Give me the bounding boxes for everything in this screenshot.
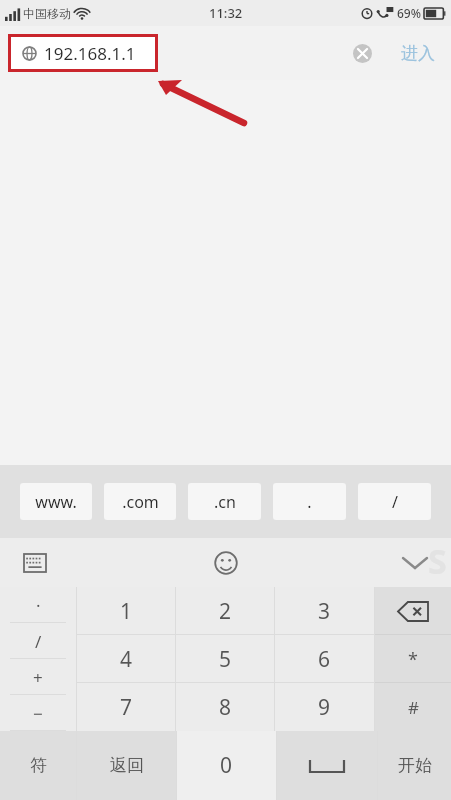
staticText: .cn [214, 491, 236, 513]
staticText: 2 [219, 597, 232, 626]
staticText: www. [35, 491, 77, 513]
button[interactable]: Backspace [375, 587, 451, 635]
staticText: / [392, 491, 398, 513]
button[interactable]: Emoji [206, 543, 246, 583]
button[interactable]: 4 [77, 635, 176, 683]
button[interactable]: / [358, 483, 431, 520]
staticText: − [33, 702, 43, 725]
staticText: · [36, 594, 41, 617]
staticText: 11:32 [209, 4, 243, 22]
staticText: 7 [120, 693, 133, 722]
button[interactable]: .cn [188, 483, 261, 520]
button[interactable]: 5 [176, 635, 275, 683]
staticText: 5 [219, 645, 232, 674]
button[interactable]: 192.168.1.1 [8, 34, 389, 72]
staticText: 符 [30, 755, 47, 776]
button[interactable]: 2 [176, 587, 275, 635]
staticText: 9 [318, 693, 331, 722]
staticText: S [428, 538, 447, 584]
staticText: 8 [219, 693, 232, 722]
button[interactable]: Hide keyboard [395, 543, 435, 583]
staticText: 开始 [398, 755, 432, 776]
button[interactable]: / [0, 623, 76, 659]
button[interactable]: 8 [176, 683, 275, 731]
button[interactable]: 0 [177, 731, 276, 800]
staticText: + [33, 666, 43, 689]
staticText: 中国移动 [23, 6, 71, 21]
staticText: 4 [120, 645, 133, 674]
button[interactable]: 符 [0, 731, 76, 800]
staticText: 6 [318, 645, 331, 674]
button[interactable]: * [375, 635, 451, 683]
button[interactable]: + [0, 659, 76, 695]
button[interactable]: 3 [275, 587, 374, 635]
button[interactable]: · [0, 587, 76, 623]
staticText: 0 [220, 751, 233, 780]
staticText: 192.168.1.1 [44, 42, 136, 65]
staticText: 返回 [110, 755, 144, 776]
button[interactable]: 7 [77, 683, 176, 731]
staticText: * [408, 647, 418, 672]
button[interactable]: .com [104, 483, 176, 520]
button[interactable]: 进入 [389, 26, 447, 80]
staticText: 69% [397, 5, 421, 21]
staticText: # [408, 696, 419, 719]
button[interactable]: . [273, 483, 346, 520]
staticText: 3 [318, 597, 331, 626]
button[interactable]: 9 [275, 683, 374, 731]
button[interactable]: 6 [275, 635, 374, 683]
button[interactable]: Space [277, 731, 377, 800]
staticText: .com [122, 491, 159, 513]
staticText: 1 [120, 597, 133, 626]
button[interactable]: 开始 [378, 731, 451, 800]
button[interactable]: − [0, 695, 76, 731]
button[interactable]: Clear [347, 38, 377, 68]
button[interactable]: 1 [77, 587, 176, 635]
staticText: / [35, 630, 42, 653]
staticText: 进入 [401, 43, 435, 64]
button[interactable]: www. [20, 483, 92, 520]
button[interactable]: Keyboard settings [18, 546, 52, 580]
staticText: . [307, 491, 312, 513]
button[interactable]: 返回 [77, 731, 176, 800]
button[interactable]: # [375, 683, 451, 731]
